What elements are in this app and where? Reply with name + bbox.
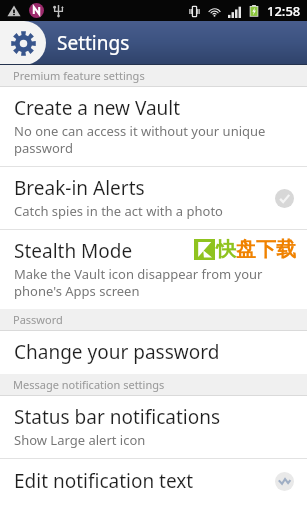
staticText: Create a new Vault <box>14 95 181 121</box>
button[interactable]: Create a new Vault <box>0 87 307 166</box>
staticText: Change your password <box>14 339 220 365</box>
staticText: Catch spies in the act with a photo <box>14 202 223 220</box>
staticText: 快 <box>216 237 236 262</box>
staticText: Password <box>13 312 63 327</box>
button[interactable]: Status bar notifications <box>0 396 307 458</box>
button[interactable]: Enable Break-in Alerts <box>270 184 298 212</box>
button[interactable]: Edit notification text <box>270 467 298 495</box>
staticText: Show Large alert icon <box>14 431 146 449</box>
staticText: No one can access it without your unique… <box>14 122 266 157</box>
staticText: Make the Vault icon disappear from your … <box>14 265 263 300</box>
button[interactable]: Navigate up, Settings <box>5 25 41 61</box>
staticText: Edit notification text <box>14 468 194 494</box>
staticText: 12:58 <box>267 2 301 20</box>
staticText: Break-in Alerts <box>14 175 145 201</box>
button[interactable]: Break-in Alerts <box>0 167 307 229</box>
staticText: Status bar notifications <box>14 404 221 430</box>
staticText: Stealth Mode <box>14 238 133 264</box>
staticText: Premium feature settings <box>13 68 145 83</box>
button[interactable]: Stealth Mode <box>0 230 307 309</box>
staticText: Message notification settings <box>13 377 165 392</box>
button[interactable]: Change your password <box>0 331 307 374</box>
staticText: Settings <box>57 30 130 56</box>
button[interactable]: Edit notification text <box>0 459 307 504</box>
staticText: 盘下载 <box>236 237 296 262</box>
